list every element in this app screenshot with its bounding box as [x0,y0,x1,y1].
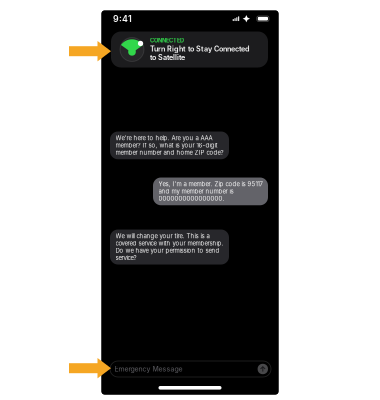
staticText: 9:41 [113,13,132,24]
staticText: CONNECTED [150,37,184,44]
staticText: We will change your tire. This is a cove… [115,232,223,261]
staticText: Yes, I'm a member. Zip code is 95117 and… [158,180,262,202]
staticText: Emergency Message [114,365,182,373]
staticText: Turn Right to Stay Connected to Satellit… [150,44,249,62]
button[interactable]: Send message [257,363,269,375]
button[interactable]: CONNECTED [111,31,268,67]
staticText: We're here to help. Are you a AAA member… [115,134,223,156]
